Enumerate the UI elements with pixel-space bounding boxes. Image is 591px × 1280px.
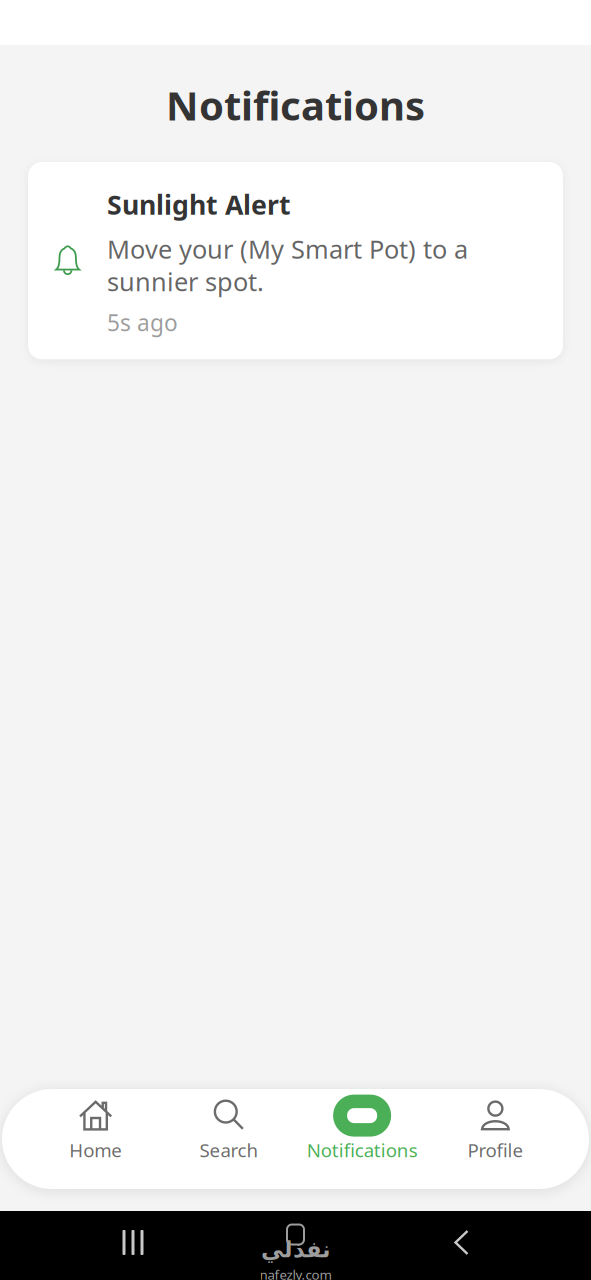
- staticText: Profile: [467, 1138, 523, 1162]
- button[interactable]: Profile: [429, 1094, 562, 1162]
- staticText: Move your (My Smart Pot) to a sunnier sp…: [107, 232, 468, 298]
- button[interactable]: Sunlight Alert: [28, 162, 563, 359]
- staticText: Notifications: [307, 1138, 418, 1162]
- button[interactable]: Home: [29, 1094, 162, 1162]
- staticText: Notifications: [166, 78, 425, 131]
- staticText: Home: [69, 1138, 122, 1162]
- button[interactable]: Back: [451, 1228, 472, 1257]
- button[interactable]: Notifications: [295, 1094, 429, 1162]
- button[interactable]: Search: [162, 1094, 295, 1162]
- staticText: 5s ago: [107, 307, 178, 337]
- staticText: Search: [199, 1138, 258, 1162]
- staticText: نفذلي: [260, 1237, 330, 1262]
- staticText: nafezly.com: [259, 1266, 331, 1280]
- staticText: Sunlight Alert: [107, 187, 291, 222]
- button[interactable]: Recent apps: [121, 1228, 145, 1256]
